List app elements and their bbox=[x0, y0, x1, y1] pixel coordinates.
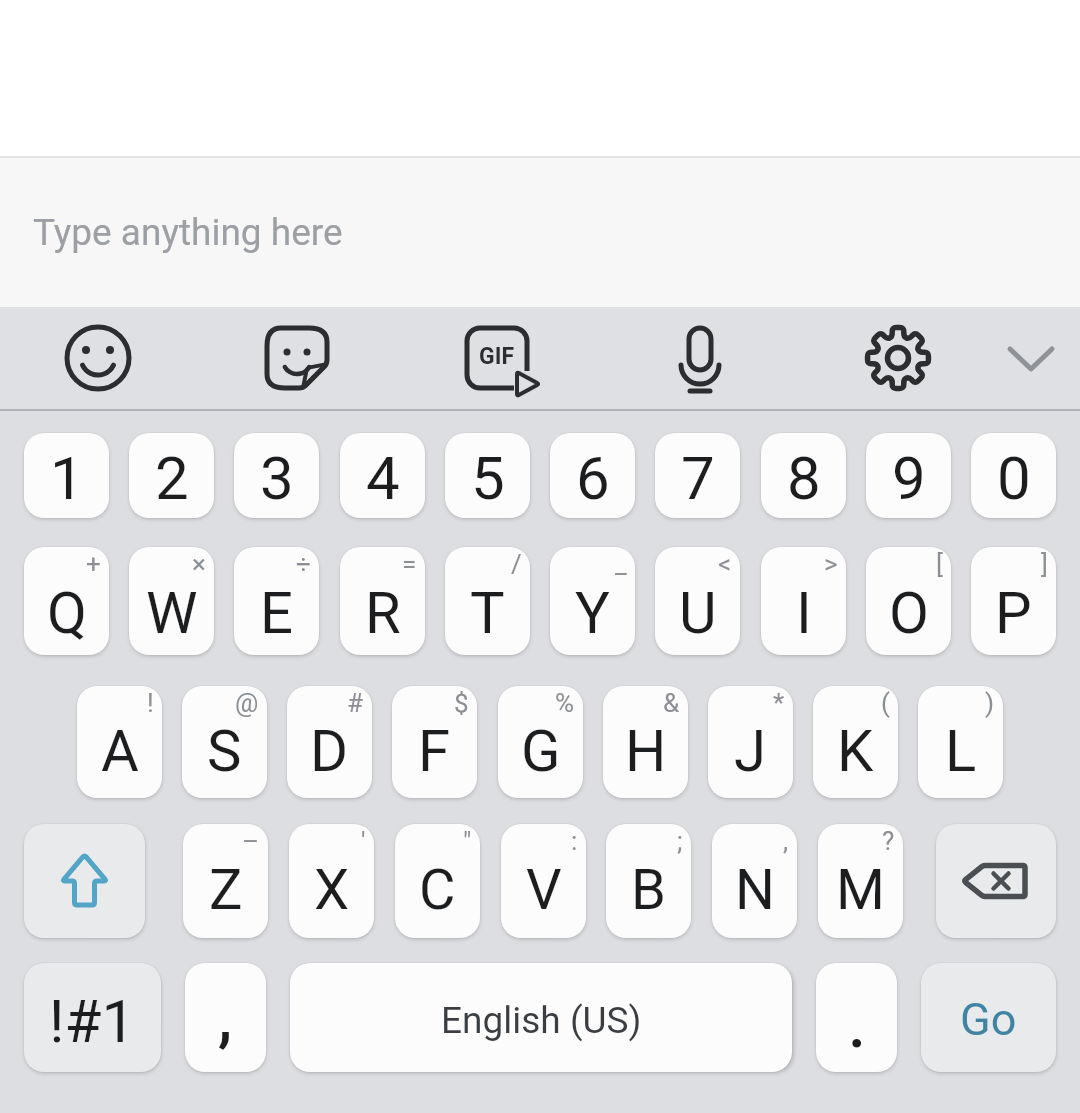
staticText: + bbox=[86, 549, 101, 579]
button[interactable]: H bbox=[603, 686, 688, 798]
button[interactable]: K bbox=[813, 686, 898, 798]
button[interactable] bbox=[24, 824, 145, 938]
staticText: ) bbox=[985, 688, 995, 718]
staticText: Z bbox=[209, 857, 243, 923]
button[interactable]: N bbox=[712, 824, 797, 938]
staticText: 9 bbox=[892, 443, 926, 513]
staticText: ' bbox=[361, 826, 366, 856]
button[interactable]: Y bbox=[550, 547, 635, 655]
staticText: U bbox=[679, 579, 717, 647]
staticText: × bbox=[192, 549, 206, 579]
button[interactable]: 0 bbox=[971, 433, 1056, 518]
staticText: N bbox=[735, 857, 775, 923]
button[interactable] bbox=[863, 323, 933, 393]
button[interactable]: 3 bbox=[234, 433, 319, 518]
staticText: – bbox=[242, 826, 260, 856]
staticText: . bbox=[848, 988, 866, 1063]
staticText: X bbox=[314, 857, 350, 923]
button[interactable]: A bbox=[77, 686, 162, 798]
button[interactable]: 4 bbox=[340, 433, 425, 518]
button[interactable]: D bbox=[287, 686, 372, 798]
staticText: I bbox=[796, 579, 812, 647]
button[interactable]: C bbox=[395, 824, 480, 938]
button[interactable]: E bbox=[234, 547, 319, 655]
staticText: G bbox=[521, 717, 561, 785]
button[interactable]: J bbox=[708, 686, 793, 798]
button[interactable]: 2 bbox=[129, 433, 214, 518]
staticText: M bbox=[836, 857, 885, 923]
button[interactable]: Q bbox=[24, 547, 109, 655]
staticText: 5 bbox=[471, 443, 505, 513]
staticText: [ bbox=[936, 549, 943, 579]
button[interactable]: English (US) bbox=[290, 963, 792, 1072]
button[interactable]: I bbox=[761, 547, 846, 655]
button[interactable]: . bbox=[816, 963, 897, 1072]
button[interactable]: Go bbox=[921, 963, 1056, 1072]
button[interactable]: GIF bbox=[462, 323, 532, 393]
button[interactable]: 8 bbox=[761, 433, 846, 518]
button[interactable]: V bbox=[501, 824, 586, 938]
button[interactable]: Type anything here bbox=[0, 158, 1080, 307]
staticText: B bbox=[631, 857, 666, 923]
staticText: H bbox=[625, 717, 667, 785]
staticText: 7 bbox=[681, 443, 715, 513]
staticText: D bbox=[310, 717, 349, 785]
staticText: : bbox=[571, 826, 578, 856]
button[interactable]: P bbox=[971, 547, 1056, 655]
button[interactable]: L bbox=[918, 686, 1003, 798]
button[interactable]: , bbox=[185, 963, 266, 1072]
staticText: S bbox=[207, 717, 242, 785]
button[interactable]: U bbox=[655, 547, 740, 655]
button[interactable]: F bbox=[392, 686, 477, 798]
button[interactable]: S bbox=[182, 686, 267, 798]
button[interactable]: G bbox=[498, 686, 583, 798]
staticText: % bbox=[555, 688, 575, 718]
staticText: A bbox=[101, 717, 139, 785]
button[interactable]: O bbox=[866, 547, 951, 655]
button[interactable]: M bbox=[818, 824, 903, 938]
staticText: Go bbox=[960, 993, 1017, 1046]
staticText: ÷ bbox=[296, 549, 311, 579]
button[interactable]: Z bbox=[183, 824, 268, 938]
staticText: V bbox=[526, 857, 562, 923]
staticText: 3 bbox=[260, 443, 294, 513]
staticText: ( bbox=[881, 688, 890, 718]
staticText: 1 bbox=[50, 443, 84, 513]
staticText: R bbox=[365, 579, 401, 647]
staticText: W bbox=[146, 579, 198, 647]
button[interactable]: X bbox=[289, 824, 374, 938]
staticText: GIF bbox=[479, 343, 514, 370]
button[interactable]: 1 bbox=[24, 433, 109, 518]
button[interactable] bbox=[63, 323, 133, 393]
staticText: < bbox=[718, 549, 732, 579]
button[interactable]: B bbox=[606, 824, 691, 938]
staticText: ] bbox=[1041, 549, 1048, 579]
staticText: " bbox=[463, 826, 472, 856]
button[interactable] bbox=[665, 323, 735, 393]
button[interactable]: T bbox=[445, 547, 530, 655]
staticText: L bbox=[945, 717, 977, 785]
staticText: @ bbox=[235, 688, 259, 718]
staticText: 4 bbox=[366, 443, 400, 513]
button[interactable]: 7 bbox=[655, 433, 740, 518]
button[interactable]: W bbox=[129, 547, 214, 655]
button[interactable] bbox=[936, 824, 1056, 938]
staticText: T bbox=[470, 579, 505, 647]
button[interactable] bbox=[262, 323, 332, 393]
staticText: F bbox=[418, 717, 451, 785]
staticText: ? bbox=[882, 826, 895, 856]
staticText: , bbox=[218, 980, 233, 1055]
staticText: , bbox=[783, 826, 789, 856]
staticText: = bbox=[402, 549, 417, 579]
button[interactable]: 6 bbox=[550, 433, 635, 518]
staticText: > bbox=[824, 549, 838, 579]
button[interactable]: !#1 bbox=[24, 963, 161, 1072]
staticText: O bbox=[889, 579, 929, 647]
button[interactable] bbox=[996, 323, 1066, 393]
button[interactable]: 5 bbox=[445, 433, 530, 518]
button[interactable]: 9 bbox=[866, 433, 951, 518]
staticText: ; bbox=[677, 826, 683, 856]
button[interactable]: R bbox=[340, 547, 425, 655]
staticText: Y bbox=[575, 579, 610, 647]
staticText: 6 bbox=[576, 443, 610, 513]
